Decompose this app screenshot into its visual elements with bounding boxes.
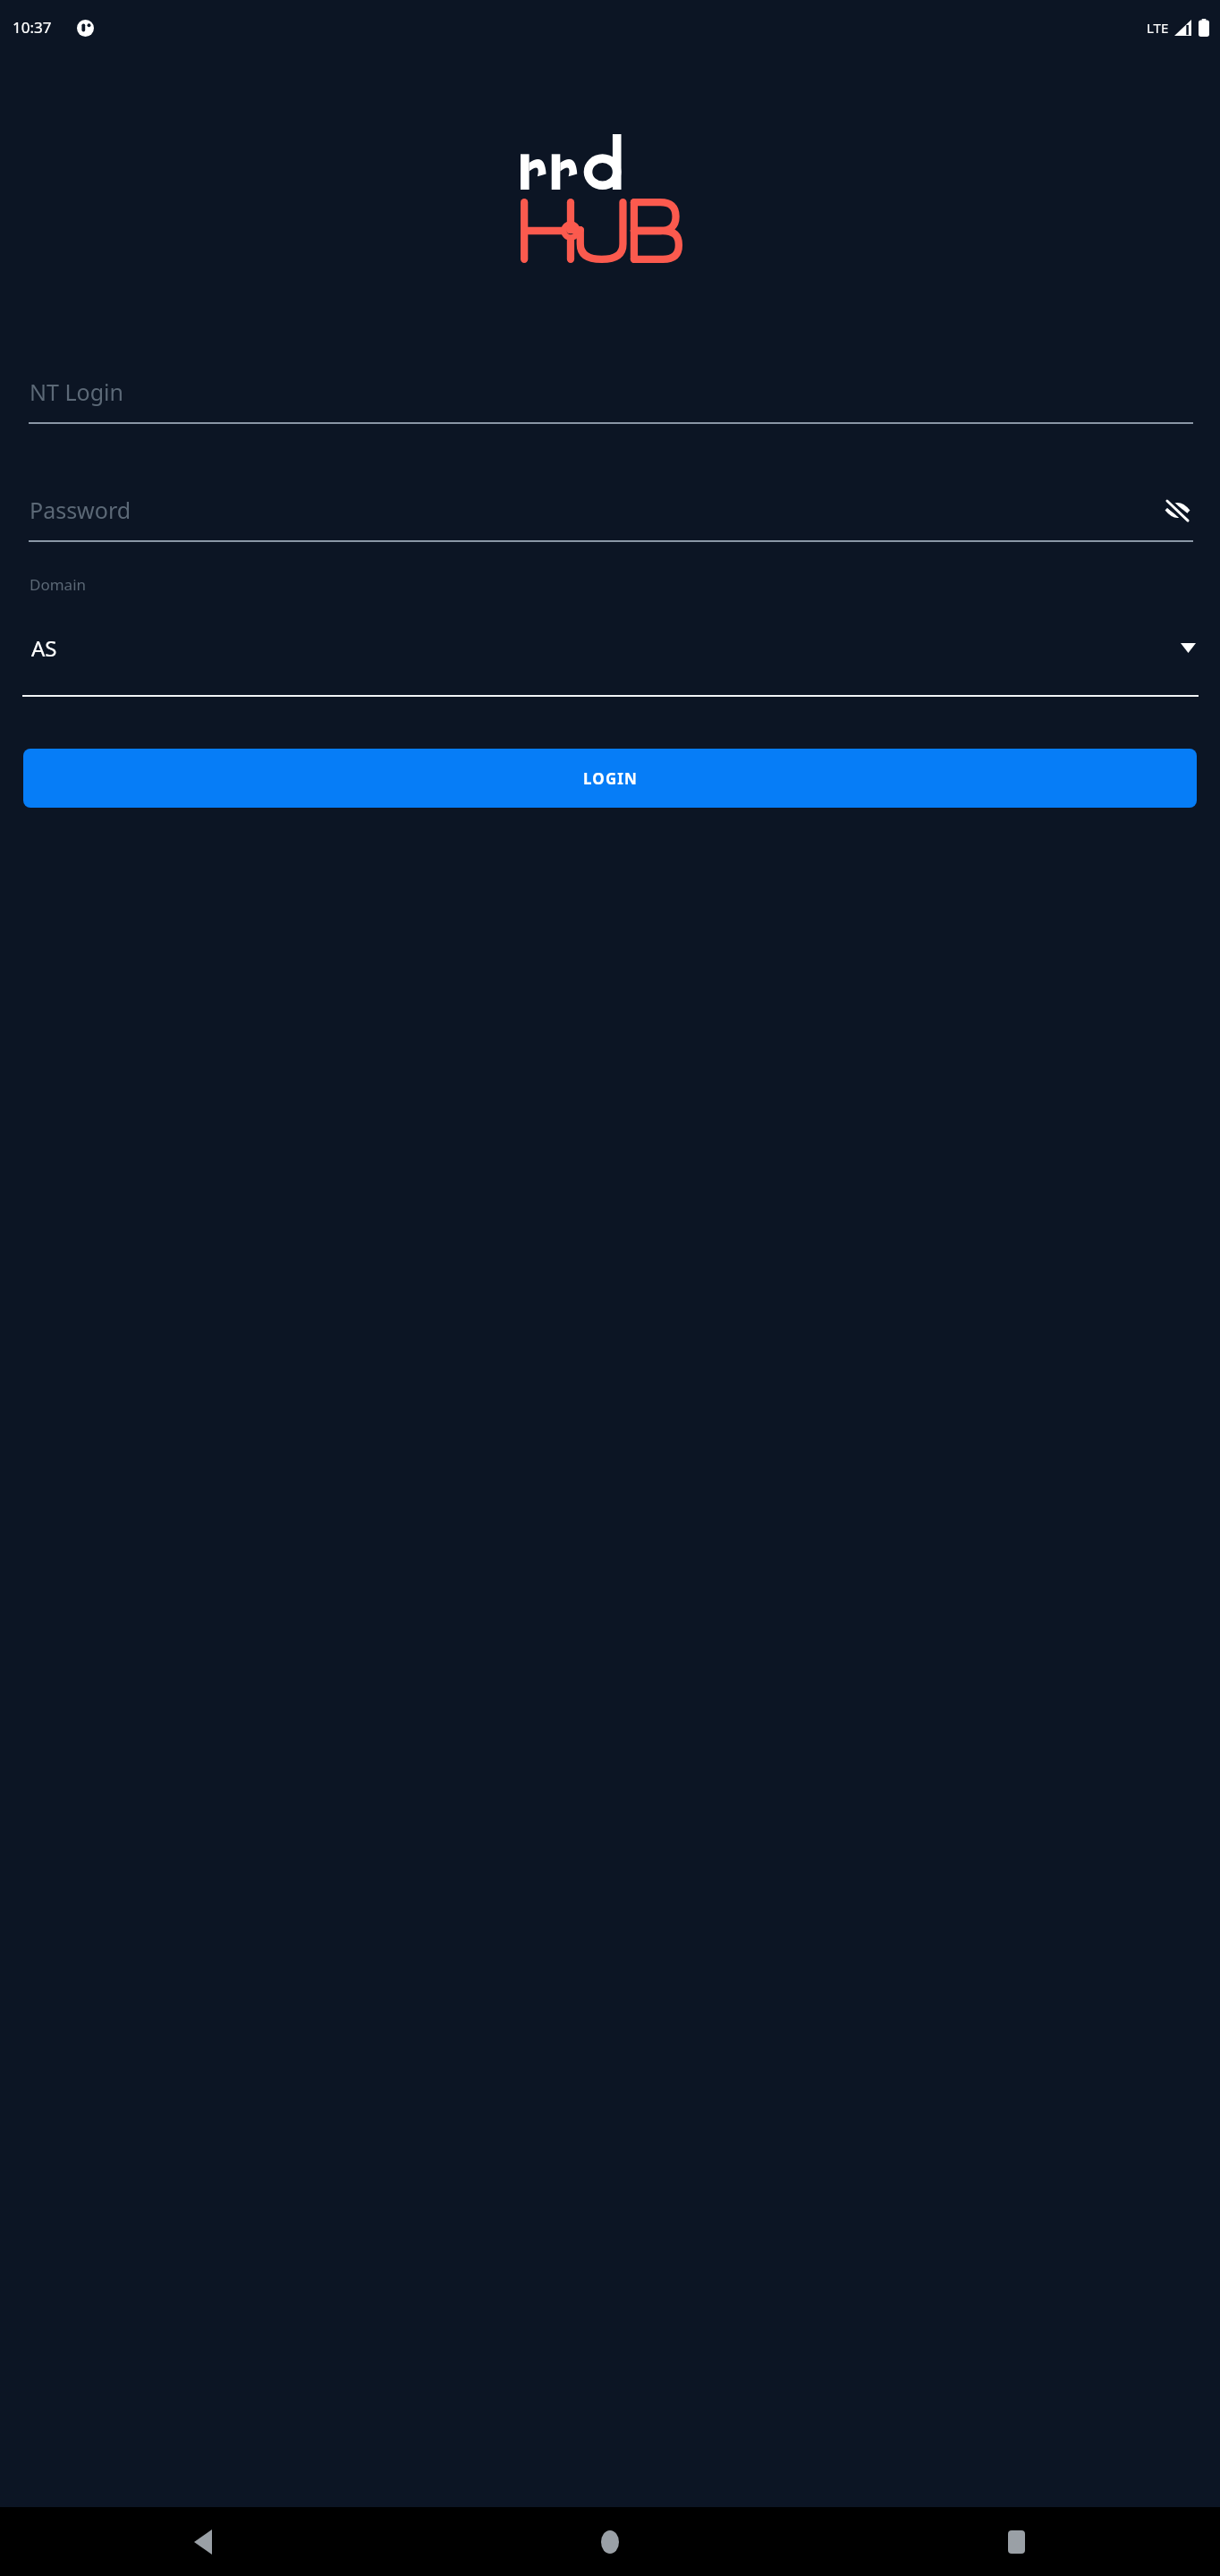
button[interactable]: Recent apps bbox=[813, 2507, 1220, 2576]
button[interactable]: LOGIN bbox=[23, 749, 1197, 808]
button[interactable]: AS bbox=[0, 620, 1220, 675]
button[interactable]: Toggle password visibility bbox=[1157, 490, 1197, 530]
button[interactable]: Password bbox=[0, 487, 1220, 542]
staticText: NT Login bbox=[30, 377, 123, 407]
staticText: Password bbox=[30, 495, 131, 525]
staticText: LTE bbox=[1147, 19, 1169, 37]
button[interactable]: Back bbox=[0, 2507, 406, 2576]
staticText: Domain bbox=[30, 574, 87, 595]
button[interactable]: NT Login bbox=[0, 369, 1220, 424]
staticText: LOGIN bbox=[583, 768, 638, 789]
staticText: AS bbox=[31, 633, 57, 663]
button[interactable]: Home bbox=[406, 2507, 813, 2576]
staticText: 10:37 bbox=[13, 17, 52, 38]
